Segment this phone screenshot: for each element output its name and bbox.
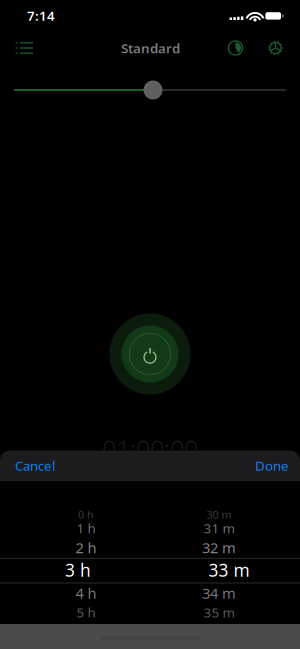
button[interactable]: Presets bbox=[4, 31, 44, 65]
staticText: 3 h bbox=[65, 558, 91, 581]
staticText: 0 h bbox=[78, 507, 94, 522]
button[interactable]: History bbox=[219, 32, 251, 64]
button[interactable]: Done bbox=[219, 450, 300, 480]
staticText: Standard bbox=[121, 39, 180, 57]
staticText: 35 m bbox=[203, 603, 234, 621]
staticText: 31 m bbox=[203, 519, 234, 537]
button[interactable]: Cancel bbox=[0, 450, 85, 480]
staticText: 33 m bbox=[208, 558, 249, 581]
staticText: 1 h bbox=[76, 519, 95, 537]
button[interactable]: Settings bbox=[259, 32, 291, 64]
staticText: 2 h bbox=[75, 538, 96, 557]
staticText: 34 m bbox=[202, 583, 236, 603]
button[interactable]: Start timer bbox=[105, 309, 195, 399]
staticText: Done bbox=[255, 457, 289, 474]
staticText: Cancel bbox=[15, 457, 55, 474]
staticText: 4 h bbox=[75, 583, 96, 603]
staticText: 5 h bbox=[76, 603, 95, 621]
staticText: 30 m bbox=[206, 507, 231, 522]
staticText: 01:00:00 bbox=[102, 432, 198, 466]
staticText: 32 m bbox=[202, 538, 236, 557]
staticText: 7:14 bbox=[27, 7, 55, 24]
